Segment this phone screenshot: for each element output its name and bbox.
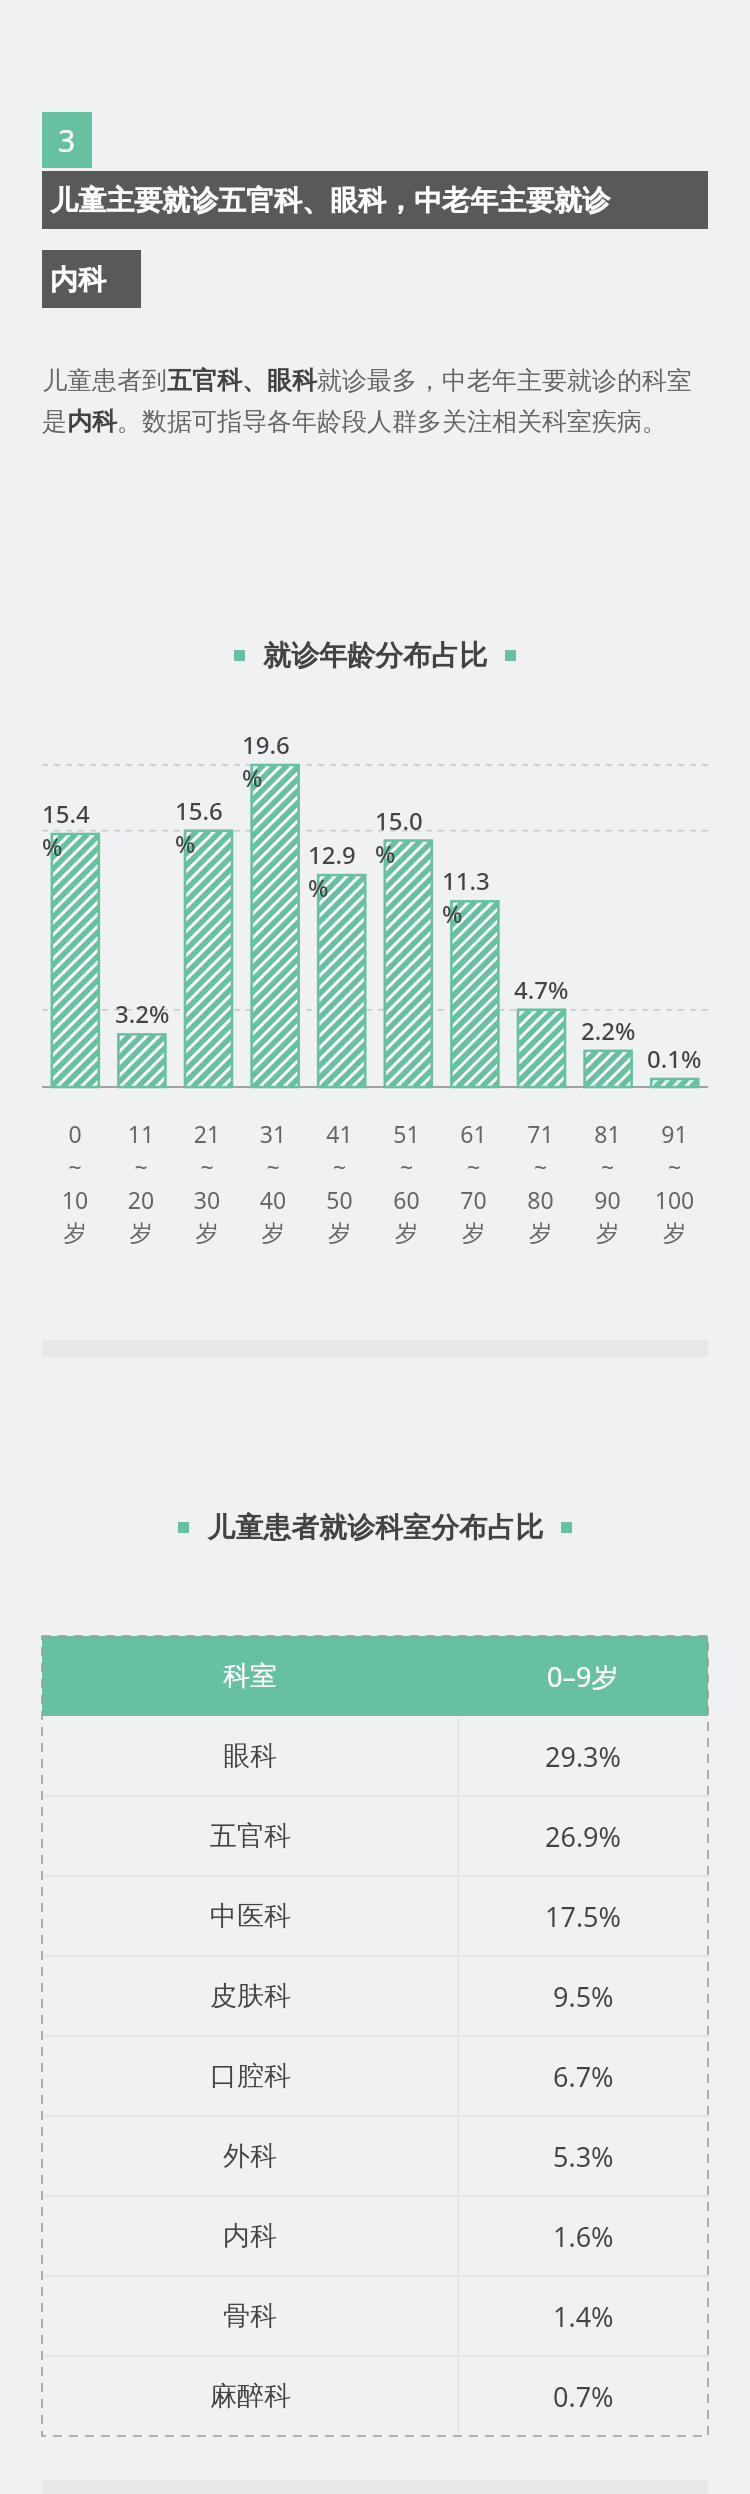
staticText: 0–9岁 [547, 1658, 619, 1695]
staticText: 31 ~ 40 岁 [240, 1118, 306, 1247]
staticText: 81 ~ 90 岁 [574, 1118, 641, 1247]
staticText: 口腔科 [210, 2059, 291, 2093]
staticText: 儿童患者到五官科、眼科就诊最多，中老年主要就诊的科室是内科。数据可指导各年龄段人… [42, 365, 708, 437]
staticText: 21 ~ 30 岁 [174, 1118, 240, 1247]
staticText: 3 [58, 120, 76, 161]
staticText: 3.2% [115, 997, 170, 1030]
staticText: 2.2% [581, 1014, 636, 1047]
staticText: 就诊年龄分布占比 [263, 638, 487, 673]
staticText: 0 ~ 10 岁 [42, 1118, 108, 1247]
staticText: 61 ~ 70 岁 [440, 1118, 507, 1247]
staticText: 科室 [223, 1659, 277, 1693]
staticText: 41 ~ 50 岁 [306, 1118, 373, 1247]
staticText: 骨科 [223, 2299, 277, 2333]
staticText: 儿童主要就诊五官科、眼科，中老年主要就诊 [50, 183, 610, 218]
staticText: 11 ~ 20 岁 [108, 1118, 174, 1247]
staticText: 内科 [223, 2219, 277, 2253]
staticText: 内科 [50, 262, 106, 297]
button[interactable]: 科室 [42, 1636, 708, 1716]
staticText: 眼科 [223, 1739, 277, 1773]
staticText: 17.5% [545, 1898, 622, 1935]
button[interactable]: 中医科 [42, 1876, 708, 1956]
button[interactable]: 内科 [42, 2196, 708, 2276]
staticText: 12.9% [308, 838, 375, 904]
staticText: 9.5% [553, 1978, 614, 2015]
staticText: 皮肤科 [210, 1979, 291, 2013]
staticText: 15.4% [42, 797, 109, 863]
staticText: 0.7% [553, 2378, 614, 2415]
staticText: 11.3% [442, 864, 509, 930]
staticText: 五官科 [210, 1819, 291, 1853]
button[interactable]: 外科 [42, 2116, 708, 2196]
staticText: 51 ~ 60 岁 [373, 1118, 440, 1247]
staticText: 6.7% [553, 2058, 614, 2095]
button[interactable]: 口腔科 [42, 2036, 708, 2116]
staticText: 中医科 [210, 1899, 291, 1933]
staticText: 91 ~ 100 岁 [641, 1118, 708, 1247]
staticText: 0.1% [647, 1042, 702, 1075]
button[interactable]: 麻醉科 [42, 2356, 708, 2436]
staticText: 29.3% [545, 1738, 622, 1775]
button[interactable]: 眼科 [42, 1716, 708, 1796]
staticText: 71 ~ 80 岁 [507, 1118, 574, 1247]
button[interactable]: 皮肤科 [42, 1956, 708, 2036]
staticText: 4.7% [514, 973, 569, 1006]
staticText: 5.3% [553, 2138, 614, 2175]
staticText: 26.9% [545, 1818, 622, 1855]
staticText: 15.0% [375, 804, 442, 870]
staticText: 外科 [223, 2139, 277, 2173]
staticText: 儿童患者就诊科室分布占比 [207, 1510, 543, 1545]
button[interactable]: 3 [42, 112, 92, 168]
staticText: 1.6% [553, 2218, 614, 2255]
staticText: 15.6% [175, 794, 242, 860]
button[interactable]: 五官科 [42, 1796, 708, 1876]
staticText: 麻醉科 [210, 2379, 291, 2413]
staticText: 19.6% [242, 728, 309, 794]
staticText: 1.4% [553, 2298, 614, 2335]
button[interactable]: 骨科 [42, 2276, 708, 2356]
